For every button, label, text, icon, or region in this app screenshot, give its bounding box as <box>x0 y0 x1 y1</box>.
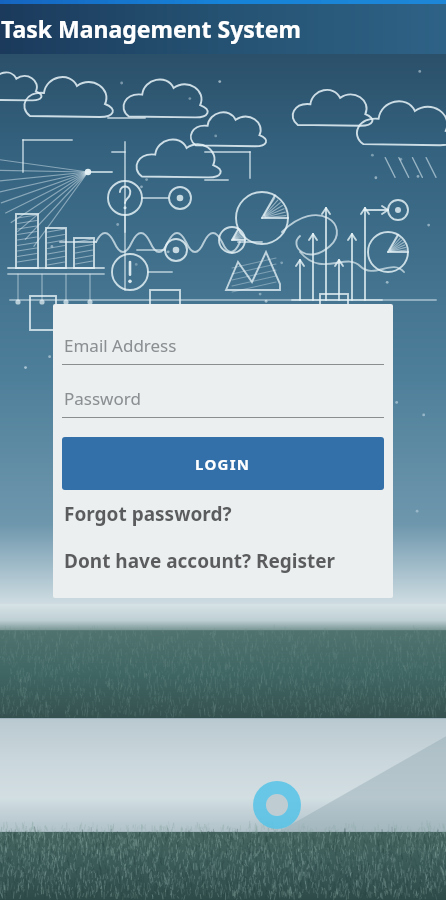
staticText: Dont have account? Register <box>64 548 336 574</box>
staticText: Task Management System <box>1 13 302 44</box>
button[interactable]: Dont have account? Register <box>62 538 384 584</box>
other: Touch indicator <box>253 781 301 829</box>
button[interactable]: Forgot password? <box>62 490 384 538</box>
button[interactable]: LOGIN <box>62 437 384 490</box>
staticText: Forgot password? <box>64 501 232 527</box>
staticText: Password <box>64 387 141 410</box>
staticText: LOGIN <box>195 454 251 474</box>
staticText: Email Address <box>64 334 177 357</box>
